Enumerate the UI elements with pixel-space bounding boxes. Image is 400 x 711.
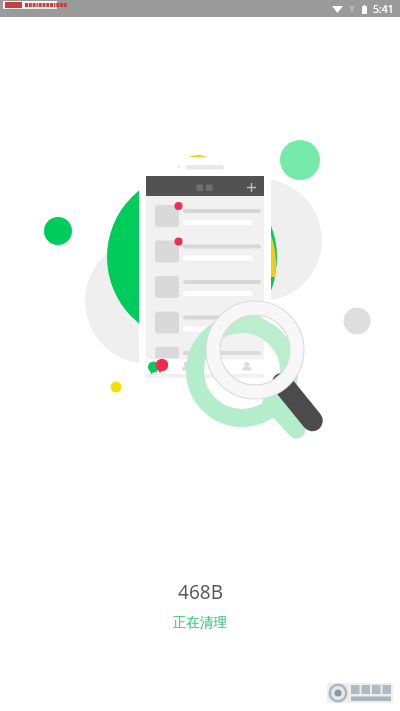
staticText: 5:41 <box>373 2 394 16</box>
staticText: 468B <box>178 579 223 605</box>
staticText: 正在清理 <box>173 614 227 631</box>
